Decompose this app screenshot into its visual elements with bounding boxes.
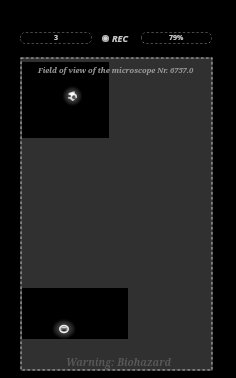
staticText: Field of view of the microscope Nr. 6757… <box>38 65 194 75</box>
staticText: Warning: Biohazard <box>66 355 172 369</box>
button[interactable]: Battery 79 percent <box>141 32 212 44</box>
staticText: REC <box>112 32 128 44</box>
button[interactable]: Recording <box>102 32 128 44</box>
button[interactable]: Upper field of view <box>22 62 109 138</box>
button[interactable]: Sample slot 3 <box>20 32 92 44</box>
staticText: 79% <box>169 33 184 43</box>
button[interactable]: Lower field of view <box>22 288 128 339</box>
staticText: 3 <box>54 33 59 43</box>
